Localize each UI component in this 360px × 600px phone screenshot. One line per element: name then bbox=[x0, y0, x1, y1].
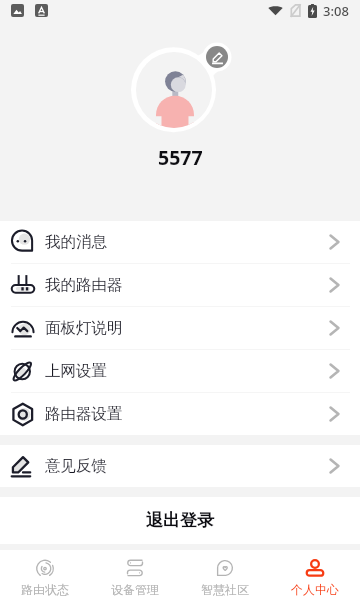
button[interactable]: 上网设置 bbox=[0, 350, 360, 392]
button[interactable]: 面板灯说明 bbox=[0, 307, 360, 349]
staticText: 路由器设置 bbox=[45, 404, 123, 424]
staticText: 我的路由器 bbox=[45, 275, 123, 295]
button[interactable]: Edit profile picture bbox=[206, 46, 228, 68]
button[interactable]: Avatar bbox=[131, 47, 216, 132]
staticText: 个人中心 bbox=[291, 582, 339, 597]
button[interactable]: 我的路由器 bbox=[0, 264, 360, 306]
staticText: 面板灯说明 bbox=[45, 318, 123, 338]
staticText: 路由状态 bbox=[21, 582, 69, 597]
button[interactable]: 退出登录 bbox=[0, 497, 360, 544]
button[interactable]: 路由状态 bbox=[0, 550, 90, 600]
button[interactable]: 智慧社区 bbox=[180, 550, 270, 600]
button[interactable]: 我的消息 bbox=[0, 221, 360, 263]
staticText: 我的消息 bbox=[45, 232, 107, 252]
staticText: 3:08 bbox=[323, 2, 349, 20]
staticText: 5577 bbox=[158, 144, 203, 171]
staticText: 智慧社区 bbox=[201, 582, 249, 597]
button[interactable]: 设备管理 bbox=[90, 550, 180, 600]
button[interactable]: 个人中心 bbox=[270, 550, 360, 600]
button[interactable]: 路由器设置 bbox=[0, 393, 360, 435]
staticText: 意见反馈 bbox=[45, 456, 107, 476]
button[interactable]: 意见反馈 bbox=[0, 445, 360, 487]
staticText: 退出登录 bbox=[146, 510, 214, 531]
staticText: 设备管理 bbox=[111, 582, 159, 597]
staticText: 上网设置 bbox=[45, 361, 107, 381]
